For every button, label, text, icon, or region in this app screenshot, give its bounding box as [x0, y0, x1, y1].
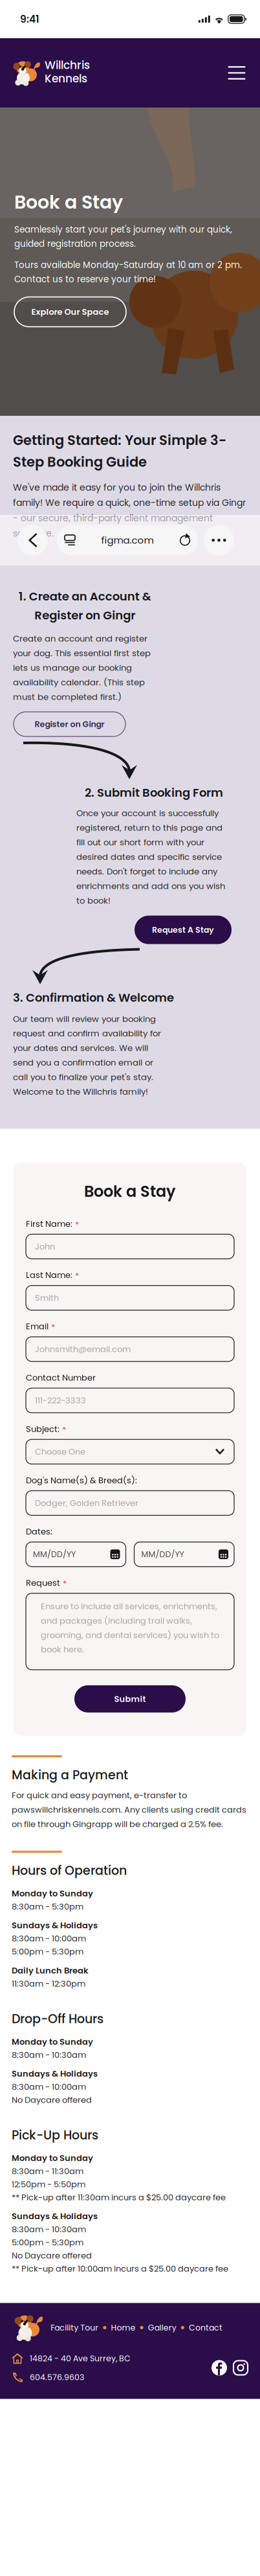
staticText: 5:00pm - 5:30pm	[12, 1946, 83, 1957]
staticText: Home	[111, 2322, 135, 2333]
button[interactable]: Reload	[172, 525, 198, 555]
staticText: Hours of Operation	[12, 1862, 127, 1879]
staticText: Book a Stay	[14, 189, 123, 215]
staticText: Pick-Up Hours	[12, 2127, 98, 2144]
staticText: *	[62, 1424, 66, 1436]
staticText: 8:30am - 10:30am	[12, 2223, 86, 2235]
staticText: 8:30am - 10:00am	[12, 1933, 86, 1944]
button[interactable]: Submit	[74, 1685, 186, 1713]
staticText: Email	[26, 1321, 49, 1332]
staticText: Seamlessly start your pet's journey with…	[14, 223, 232, 250]
staticText: Once your account is successfully regist…	[76, 807, 225, 907]
staticText: Monday to Sunday	[12, 2152, 93, 2164]
button[interactable]: Explore Our Space	[14, 297, 126, 327]
staticText: Drop-Off Hours	[12, 2010, 103, 2027]
staticText: Daily Lunch Break	[12, 1965, 89, 1976]
staticText: No Daycare offered	[12, 2250, 92, 2261]
button[interactable]: More	[204, 525, 234, 555]
staticText: Submit	[114, 1693, 146, 1705]
staticText: 12:50pm - 5:50pm	[12, 2178, 85, 2190]
staticText: 8:30am - 11:30am	[12, 2165, 83, 2177]
staticText: Johnsmith@email.com	[35, 1343, 131, 1355]
staticText: Register on Gingr	[35, 719, 104, 730]
button[interactable]: Instagram	[233, 2360, 248, 2376]
staticText: Sundays & Holidays	[12, 2068, 98, 2080]
button[interactable]: Page settings	[57, 525, 83, 555]
staticText: Last Name:	[26, 1269, 72, 1281]
staticText: Gallery	[148, 2322, 176, 2333]
staticText: Subject:	[26, 1423, 60, 1435]
staticText: Willchris	[45, 57, 90, 73]
staticText: Facility Tour	[51, 2322, 99, 2333]
staticText: We've made it easy for you to join the W…	[13, 481, 246, 540]
button[interactable]: Gallery	[148, 2322, 176, 2333]
staticText: ** Pick-up after 10:00am incurs a $25.00…	[12, 2263, 228, 2274]
staticText: *	[63, 1578, 67, 1589]
staticText: 11:30am - 12:30pm	[12, 1978, 85, 1989]
staticText: *	[51, 1321, 55, 1333]
staticText: 5:00pm - 5:30pm	[12, 2237, 83, 2248]
staticText: Request	[26, 1577, 60, 1589]
staticText: 2. Submit Booking Form	[85, 784, 223, 801]
staticText: 9:41	[20, 12, 39, 26]
staticText: Dates:	[26, 1526, 52, 1538]
staticText: 604.576.9603	[30, 2372, 84, 2383]
staticText: 3. Confirmation & Welcome	[13, 989, 174, 1006]
staticText: No Daycare offered	[12, 2094, 92, 2106]
staticText: Getting Started: Your Simple 3-Step Book…	[13, 431, 226, 471]
button[interactable]: Choose One	[26, 1439, 234, 1464]
staticText: figma.com	[101, 533, 154, 547]
staticText: Book a Stay	[84, 1181, 176, 1202]
staticText: Making a Payment	[12, 1766, 128, 1784]
staticText: Create an account and register your dog.…	[13, 633, 151, 703]
staticText: John	[35, 1241, 55, 1252]
staticText: Ensure to include all services, enrichme…	[41, 1600, 219, 1655]
staticText: First Name:	[26, 1218, 72, 1230]
staticText: 8:30am - 5:30pm	[12, 1901, 83, 1912]
button[interactable]: Register on Gingr	[14, 712, 125, 736]
staticText: Explore Our Space	[31, 306, 109, 318]
staticText: Kennels	[45, 71, 87, 86]
button[interactable]: Request A Stay	[135, 916, 232, 944]
button[interactable]: Back	[17, 525, 48, 555]
staticText: Monday to Sunday	[12, 1888, 93, 1899]
staticText: 8:30am - 10:00am	[12, 2081, 86, 2093]
staticText: Monday to Sunday	[12, 2036, 93, 2048]
button[interactable]: Willchris Kennels home	[10, 57, 90, 88]
button[interactable]: Contact	[189, 2322, 222, 2333]
staticText: Sundays & Holidays	[12, 1920, 98, 1931]
staticText: Contact	[189, 2322, 222, 2333]
staticText: 1. Create an Account & Register on Gingr	[18, 588, 151, 623]
staticText: Tours available Monday-Saturday at 10 am…	[14, 259, 242, 285]
staticText: 14824 - 40 Ave Surrey, BC	[30, 2353, 131, 2364]
staticText: Our team will review your booking reques…	[13, 1013, 161, 1098]
staticText: Contact Number	[26, 1372, 96, 1384]
staticText: *	[75, 1270, 79, 1282]
button[interactable]: Facility Tour	[51, 2322, 99, 2333]
staticText: Request A Stay	[152, 924, 214, 936]
staticText: Smith	[35, 1292, 59, 1304]
staticText: 8:30am - 10:30am	[12, 2049, 86, 2061]
button[interactable]: Facebook	[211, 2360, 227, 2376]
staticText: Dog's Name(s) & Breed(s):	[26, 1474, 137, 1486]
staticText: Dodger, Golden Retriever	[35, 1497, 138, 1509]
staticText: MM/DD/YY	[141, 1549, 184, 1560]
staticText: For quick and easy payment, e-transfer t…	[12, 1789, 246, 1830]
staticText: *	[75, 1219, 79, 1230]
staticText: Choose One	[35, 1446, 85, 1458]
staticText: ** Pick-up after 11:30am incurs a $25.00…	[12, 2191, 226, 2203]
staticText: Sundays & Holidays	[12, 2210, 98, 2222]
staticText: 111-222-3333	[35, 1395, 86, 1406]
button[interactable]: Home	[111, 2322, 135, 2333]
staticText: MM/DD/YY	[33, 1549, 76, 1560]
button[interactable]: Menu	[222, 59, 251, 87]
